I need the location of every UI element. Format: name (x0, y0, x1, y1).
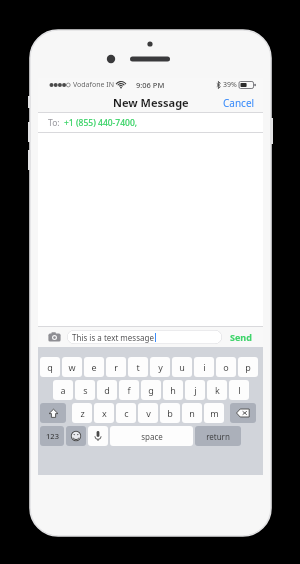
staticText: q (47, 361, 53, 373)
button[interactable]: v (138, 403, 158, 423)
button[interactable]: space (110, 426, 193, 446)
button[interactable]: y (150, 357, 170, 377)
button[interactable]: Emoji (66, 426, 86, 446)
button[interactable]: k (207, 380, 227, 400)
staticText: Vodafone IN (73, 80, 114, 90)
staticText: x (102, 407, 107, 419)
staticText: d (104, 384, 110, 396)
button[interactable]: z (72, 403, 92, 423)
staticText: u (179, 361, 185, 373)
staticText: s (83, 384, 88, 396)
button[interactable]: h (163, 380, 183, 400)
button[interactable]: Delete (230, 403, 256, 423)
button[interactable]: To: (38, 113, 263, 133)
staticText: return (206, 431, 230, 442)
button[interactable]: q (40, 357, 60, 377)
button[interactable]: p (238, 357, 258, 377)
staticText: t (136, 361, 140, 373)
staticText: a (60, 384, 66, 396)
staticText: v (146, 407, 151, 419)
staticText: New Message (113, 95, 189, 110)
staticText: i (203, 361, 206, 373)
button[interactable]: i (194, 357, 214, 377)
button[interactable]: u (172, 357, 192, 377)
button[interactable]: 123 (40, 426, 64, 446)
button[interactable]: g (141, 380, 161, 400)
staticText: r (114, 361, 118, 373)
staticText: This is a text message (72, 332, 154, 343)
staticText: l (238, 384, 241, 396)
staticText: 39% (223, 80, 237, 90)
button[interactable]: d (97, 380, 117, 400)
button[interactable]: a (53, 380, 73, 400)
button[interactable]: e (84, 357, 104, 377)
button[interactable]: return (195, 426, 241, 446)
button[interactable]: s (75, 380, 95, 400)
staticText: 9:06 PM (136, 80, 165, 90)
staticText: 123 (46, 431, 59, 441)
staticText: Send (230, 331, 252, 343)
button[interactable]: o (216, 357, 236, 377)
button[interactable]: f (119, 380, 139, 400)
button[interactable]: x (94, 403, 114, 423)
staticText: m (210, 407, 219, 419)
staticText: c (124, 407, 129, 419)
staticText: b (167, 407, 173, 419)
button[interactable]: r (106, 357, 126, 377)
staticText: space (141, 431, 163, 442)
button[interactable]: Cancel (215, 93, 263, 113)
staticText: e (91, 361, 97, 373)
staticText: +1 (855) 440-7400, (64, 117, 138, 129)
staticText: To: (48, 117, 60, 129)
button[interactable]: j (185, 380, 205, 400)
button[interactable]: Dictation (88, 426, 108, 446)
staticText: n (189, 407, 195, 419)
staticText: h (170, 384, 176, 396)
button[interactable]: This is a text message (67, 330, 222, 344)
staticText: k (215, 384, 220, 396)
staticText: Cancel (223, 96, 255, 110)
button[interactable]: m (204, 403, 224, 423)
staticText: j (194, 384, 197, 396)
staticText: z (80, 407, 85, 419)
button[interactable]: l (229, 380, 249, 400)
button[interactable]: Camera (47, 330, 61, 344)
button[interactable]: b (160, 403, 180, 423)
staticText: g (148, 384, 154, 396)
button[interactable]: w (62, 357, 82, 377)
staticText: o (223, 361, 229, 373)
button[interactable]: t (128, 357, 148, 377)
staticText: y (158, 361, 163, 373)
staticText: w (68, 361, 76, 373)
staticText: f (127, 384, 131, 396)
button[interactable]: Send (228, 328, 254, 346)
button[interactable]: Shift (40, 403, 66, 423)
button[interactable]: c (116, 403, 136, 423)
staticText: p (245, 361, 251, 373)
button[interactable]: n (182, 403, 202, 423)
